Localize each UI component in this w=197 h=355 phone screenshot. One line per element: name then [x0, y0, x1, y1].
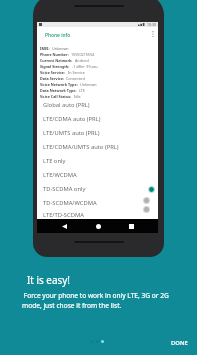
staticText: Data Network Type: [40, 88, 77, 93]
staticText: Data Service: [40, 76, 64, 81]
staticText: TD-SCDMA/WCDMA [43, 199, 97, 207]
staticText: Idle [74, 94, 81, 99]
staticText: Force your phone to work in only LTE, 3G… [22, 291, 169, 310]
staticText: Voice Network Type: [40, 82, 78, 87]
button[interactable]: LTE/WCDMA [38, 168, 148, 182]
button[interactable]: TD-SCDMA only [38, 182, 148, 196]
button[interactable]: More options [148, 29, 158, 39]
button[interactable]: Page indicator [91, 340, 104, 343]
staticText: It is easy! [27, 273, 70, 286]
staticText: DONE [171, 339, 188, 347]
button[interactable]: LTE/CDMA auto (PRL) [38, 112, 148, 126]
staticText: 10:30 [147, 22, 156, 27]
staticText: LTE/TD-SCDMA [43, 211, 84, 219]
staticText: Signal Strength: [40, 64, 70, 69]
staticText: LTE/CDMA/UMTS auto (PRL) [43, 143, 119, 151]
button[interactable]: Global auto (PRL) [38, 98, 148, 112]
staticText: TD-SCDMA only [43, 185, 86, 193]
staticText: Current Network: [40, 58, 73, 63]
button[interactable]: Back [57, 219, 71, 233]
staticText: Global auto (PRL) [43, 101, 90, 109]
staticText: Unknown [80, 82, 97, 87]
staticText: In Service [68, 70, 85, 75]
staticText: LTE only [43, 157, 66, 165]
button[interactable]: LTE/UMTS auto (PRL) [38, 126, 148, 140]
staticText: LTE [79, 88, 85, 93]
staticText: Unknown [52, 46, 69, 51]
staticText: -1 dBm 99 asu [72, 64, 98, 69]
staticText: LTE/CDMA auto (PRL) [43, 115, 101, 123]
button[interactable]: DONE [165, 333, 194, 353]
staticText: Voice Service: [40, 70, 66, 75]
staticText: Phone info [45, 32, 71, 39]
staticText: Voice Call Status: [40, 94, 72, 99]
button[interactable]: Home [91, 219, 105, 233]
staticText: 15550215554 [71, 52, 95, 57]
button[interactable]: LTE only [38, 154, 148, 168]
staticText: IMEI: [40, 46, 50, 51]
staticText: Phone Number: [40, 52, 69, 57]
staticText: Connected [66, 76, 85, 81]
staticText: LTE/WCDMA [43, 171, 77, 179]
staticText: LTE/UMTS auto (PRL) [43, 129, 100, 137]
staticText: Android [75, 58, 89, 63]
button[interactable]: LTE/TD-SCDMA [38, 210, 148, 220]
button[interactable]: LTE/CDMA/UMTS auto (PRL) [38, 140, 148, 154]
button[interactable]: TD-SCDMA/WCDMA [38, 196, 148, 210]
button[interactable]: Recent apps [124, 219, 138, 233]
